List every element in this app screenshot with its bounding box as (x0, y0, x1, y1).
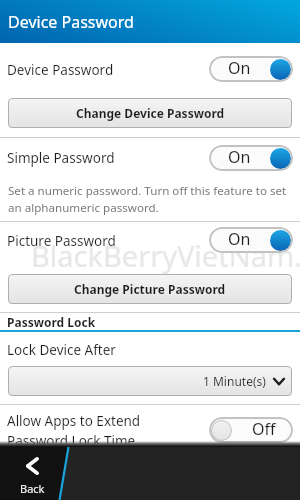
staticText: Back (20, 481, 45, 496)
staticText: On (228, 57, 251, 79)
staticText: Device Password (8, 11, 134, 33)
button[interactable]: 1 Minute(s) (8, 366, 292, 396)
staticText: Set a numeric password. Turn off this fe… (8, 183, 287, 199)
staticText: Change Device Password (76, 105, 225, 121)
button[interactable]: Toggle On (209, 145, 293, 171)
staticText: 1 Minute(s) (203, 373, 266, 389)
button[interactable]: Toggle On (209, 56, 293, 82)
button[interactable]: Toggle Off (209, 417, 293, 443)
button[interactable]: Change Picture Password (8, 274, 292, 304)
staticText: Change Picture Password (74, 281, 226, 297)
staticText: Device Password (7, 61, 114, 79)
staticText: an alphanumeric password. (8, 200, 159, 216)
staticText: Off (252, 418, 276, 440)
staticText: Password Lock (7, 314, 96, 330)
button[interactable]: Back (0, 457, 65, 496)
staticText: Password Lock Time (7, 432, 136, 450)
staticText: BlackBerryVietNam.net (31, 236, 300, 275)
staticText: Allow Apps to Extend (7, 412, 141, 430)
staticText: On (228, 228, 251, 250)
staticText: Lock Device After (7, 341, 116, 359)
staticText: On (228, 146, 251, 168)
staticText: Picture Password (7, 232, 116, 250)
staticText: Simple Password (7, 149, 115, 167)
button[interactable]: Toggle On (209, 227, 293, 253)
button[interactable]: Change Device Password (8, 98, 292, 128)
